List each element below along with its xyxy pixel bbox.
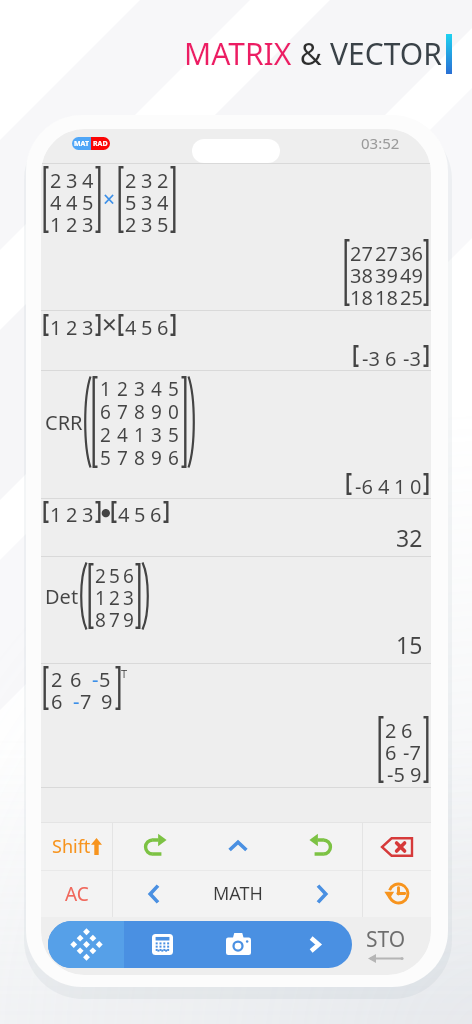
staticText: 2 [66,211,78,233]
staticText: 27 [350,240,373,262]
staticText: - [92,666,99,688]
staticText: 3 [141,189,153,211]
staticText: 2 [125,167,137,189]
staticText: AC [65,881,89,907]
staticText: 0 [410,473,422,495]
staticText: STO [366,925,406,954]
staticText: 18 [375,284,398,306]
staticText: Shift [52,834,91,859]
staticText: 9 [151,445,162,468]
staticText: 1 [134,422,145,445]
staticText: 5 [168,422,179,445]
button[interactable]: AC [41,870,112,917]
button[interactable]: STO [366,925,406,963]
staticText: -5 [387,761,405,783]
button[interactable]: Redo [113,823,196,870]
staticText: Det [45,583,79,610]
staticText: 6 [401,717,413,739]
staticText: 9 [101,688,113,710]
staticText: 2 [95,563,106,585]
staticText: 8 [134,445,145,468]
staticText: RAD [93,139,108,149]
staticText: 3 [82,314,94,336]
staticText: 1 [50,501,62,523]
staticText: 7 [117,399,128,422]
staticText: -6 [355,473,373,495]
staticText: 15 [396,629,423,660]
button[interactable]: Up [196,823,279,870]
staticText: 6 [168,445,179,468]
button[interactable]: Delete [363,823,431,870]
staticText: 3 [141,167,153,189]
staticText: 9 [410,761,422,783]
staticText: 2 [50,167,62,189]
staticText: 1 [50,211,62,233]
button[interactable]: Matrix keypad [48,921,124,968]
button[interactable]: Left [113,870,196,917]
button[interactable]: Camera [200,921,276,968]
button[interactable]: Next [276,921,352,968]
staticText: 5 [82,189,94,211]
button[interactable]: Shift [41,823,112,870]
staticText: 7 [109,607,120,629]
staticText: 7 [80,688,92,710]
staticText: -3 [362,345,380,367]
button[interactable]: Calculator [124,921,200,968]
staticText: 3 [82,501,94,523]
staticText: 4 [50,189,62,211]
staticText: 27 [375,240,398,262]
staticText: T [121,666,128,681]
staticText: 0 [168,399,179,422]
staticText: 5 [134,501,146,523]
button[interactable]: History [363,870,431,917]
staticText: 3 [141,211,153,233]
staticText: 8 [95,607,106,629]
staticText: 2 [117,376,128,399]
staticText: 6 [51,688,63,710]
staticText: 1 [95,585,106,607]
staticText: 5 [141,314,153,336]
staticText: 2 [66,314,78,336]
staticText: 7 [117,445,128,468]
staticText: 1 [100,376,111,399]
staticText: 32 [396,522,423,553]
staticText: 38 [350,262,373,284]
staticText: 3 [66,167,78,189]
staticText: 1 [394,473,406,495]
staticText: MATRIX [184,33,292,74]
staticText: 4 [66,189,78,211]
staticText: 6 [385,345,397,367]
staticText: 03:52 [361,133,400,153]
staticText: 2 [157,167,169,189]
button[interactable]: MATH [196,870,279,917]
staticText: 39 [375,262,398,284]
staticText: 6 [123,563,134,585]
staticText: 4 [117,422,128,445]
staticText: 2 [100,422,111,445]
staticText: × [103,185,116,214]
staticText: 5 [125,189,137,211]
staticText: 4 [378,473,390,495]
staticText: 5 [99,666,111,688]
staticText: CRR [45,409,83,436]
staticText: 4 [125,314,137,336]
staticText: 5 [109,563,120,585]
staticText: 2 [51,666,63,688]
staticText: 18 [350,284,373,306]
staticText: 9 [123,607,134,629]
staticText: - [73,688,80,710]
staticText: 6 [70,666,82,688]
staticText: & [292,33,330,74]
staticText: -7 [403,739,421,761]
button[interactable]: Undo [279,823,362,870]
staticText: 2 [66,501,78,523]
button[interactable]: Right [279,870,362,917]
staticText: ✕ [101,313,118,336]
staticText: 3 [151,422,162,445]
staticText: 3 [82,211,94,233]
staticText: 9 [151,399,162,422]
staticText: 8 [134,399,145,422]
staticText: -3 [403,345,421,367]
staticText: 2 [109,585,120,607]
staticText: 1 [50,314,62,336]
